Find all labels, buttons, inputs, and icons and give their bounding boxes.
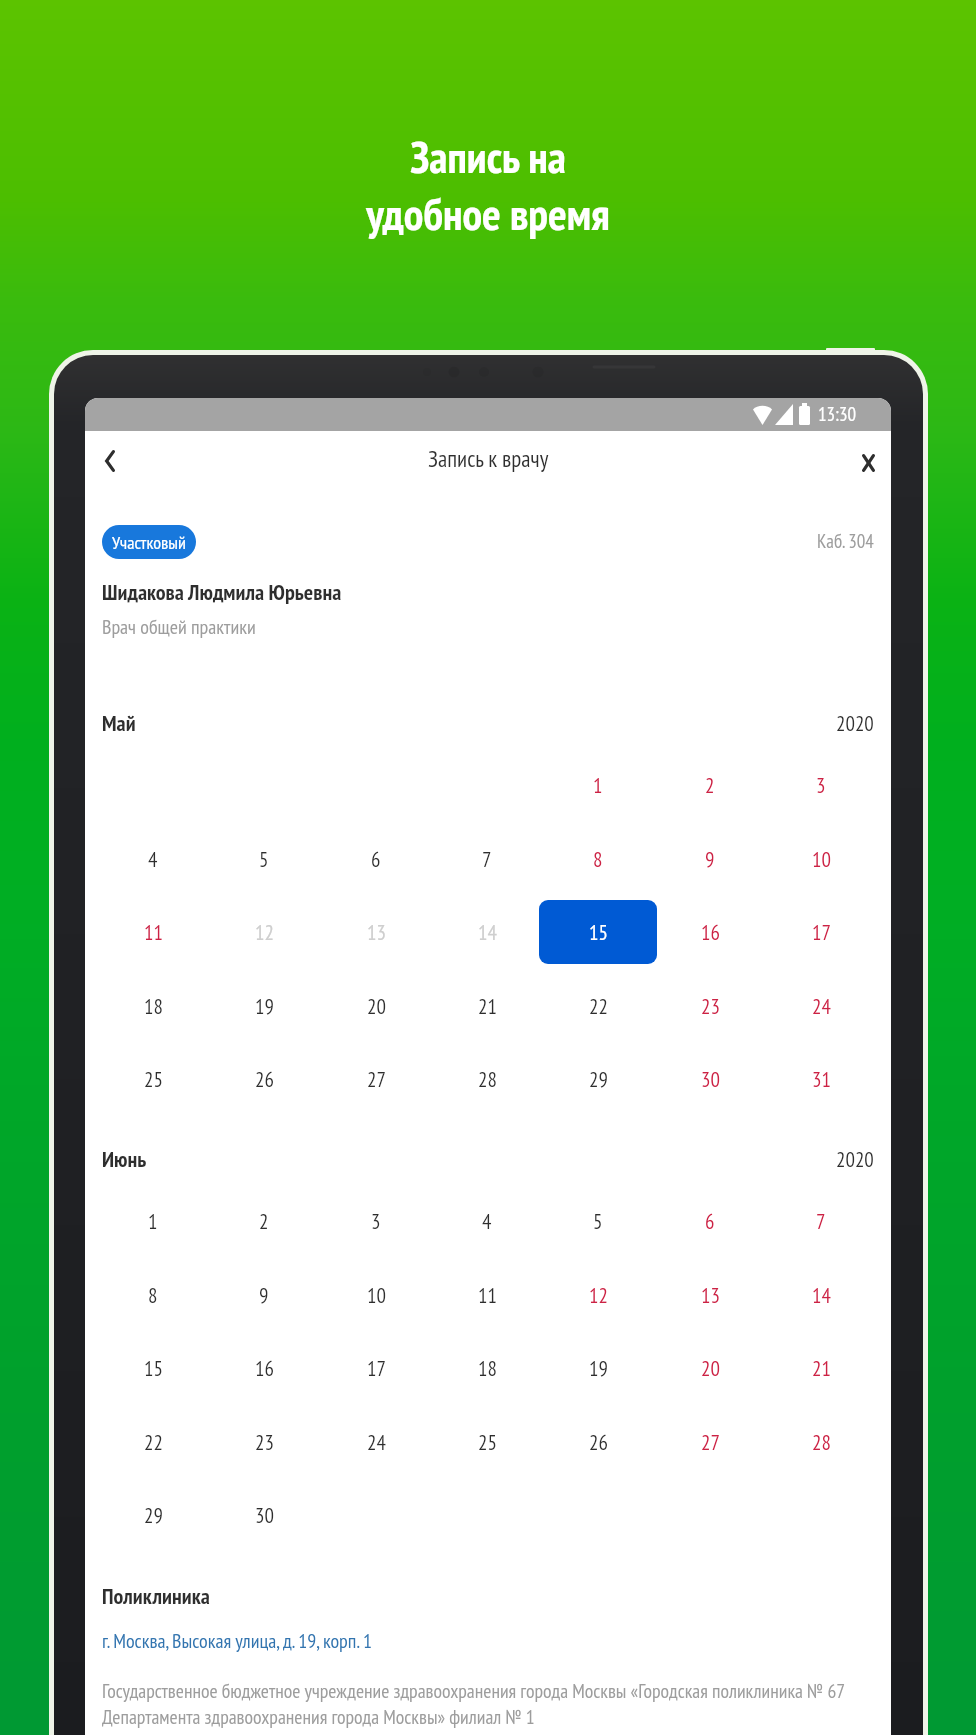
staticText: 15 xyxy=(144,1355,163,1382)
button[interactable]: 21 xyxy=(785,1340,857,1396)
staticText: 26 xyxy=(255,1066,274,1093)
staticText: Врач общей практики xyxy=(102,614,256,640)
staticText: Каб. 304 xyxy=(817,529,874,554)
button[interactable]: 25 xyxy=(451,1414,523,1470)
button[interactable]: 7 xyxy=(785,1193,857,1249)
button[interactable]: г. Москва, Высокая улица, д. 19, корп. 1 xyxy=(102,1628,372,1654)
button[interactable]: 28 xyxy=(785,1414,857,1470)
button[interactable]: 27 xyxy=(674,1414,746,1470)
staticText: 26 xyxy=(589,1429,608,1456)
staticText: 25 xyxy=(144,1066,163,1093)
button[interactable]: 18 xyxy=(451,1340,523,1396)
button[interactable]: 4 xyxy=(451,1193,523,1249)
button[interactable]: 29 xyxy=(562,1051,634,1107)
staticText: 11 xyxy=(478,1282,497,1309)
button[interactable]: 16 xyxy=(674,904,746,960)
button[interactable]: 27 xyxy=(340,1051,412,1107)
button[interactable]: 15 xyxy=(539,900,657,964)
button[interactable]: 13 xyxy=(340,904,412,960)
button[interactable]: 6 xyxy=(340,831,412,887)
button[interactable]: 26 xyxy=(562,1414,634,1470)
button[interactable]: 11 xyxy=(451,1267,523,1323)
button[interactable]: 14 xyxy=(785,1267,857,1323)
button[interactable]: 20 xyxy=(674,1340,746,1396)
staticText: 14 xyxy=(478,919,497,946)
button[interactable]: 23 xyxy=(228,1414,300,1470)
button[interactable]: 10 xyxy=(785,831,857,887)
staticText: 3 xyxy=(816,772,826,799)
button[interactable]: 1 xyxy=(562,757,634,813)
button[interactable]: 6 xyxy=(674,1193,746,1249)
button[interactable]: 24 xyxy=(340,1414,412,1470)
button[interactable]: Назад xyxy=(85,435,139,489)
staticText: 27 xyxy=(701,1429,720,1456)
button[interactable]: 22 xyxy=(562,978,634,1034)
button[interactable]: 28 xyxy=(451,1051,523,1107)
button[interactable]: 3 xyxy=(340,1193,412,1249)
staticText: 10 xyxy=(367,1282,386,1309)
button[interactable]: 2 xyxy=(674,757,746,813)
button[interactable]: 14 xyxy=(451,904,523,960)
staticText: 21 xyxy=(478,993,497,1020)
staticText: 20 xyxy=(701,1355,720,1382)
staticText: 5 xyxy=(259,846,269,873)
button[interactable]: 5 xyxy=(562,1193,634,1249)
staticText: Государственное бюджетное учреждение здр… xyxy=(102,1678,882,1730)
button[interactable]: 9 xyxy=(674,831,746,887)
staticText: 21 xyxy=(812,1355,831,1382)
button[interactable]: 15 xyxy=(117,1340,189,1396)
staticText: 29 xyxy=(589,1066,608,1093)
button[interactable]: 12 xyxy=(228,904,300,960)
button[interactable]: 18 xyxy=(117,978,189,1034)
staticText: 25 xyxy=(478,1429,497,1456)
button[interactable]: 22 xyxy=(117,1414,189,1470)
button[interactable]: 17 xyxy=(785,904,857,960)
staticText: 9 xyxy=(705,846,715,873)
staticText: 16 xyxy=(255,1355,274,1382)
button[interactable]: 3 xyxy=(785,757,857,813)
staticText: 7 xyxy=(816,1208,826,1235)
staticText: 6 xyxy=(705,1208,715,1235)
button[interactable]: 8 xyxy=(117,1267,189,1323)
staticText: 17 xyxy=(812,919,831,946)
button[interactable]: 10 xyxy=(340,1267,412,1323)
button[interactable]: 1 xyxy=(117,1193,189,1249)
staticText: 13 xyxy=(367,919,386,946)
button[interactable]: 8 xyxy=(562,831,634,887)
button[interactable]: Закрыть xyxy=(837,435,891,489)
button[interactable]: 5 xyxy=(228,831,300,887)
button[interactable]: 4 xyxy=(117,831,189,887)
staticText: Июнь xyxy=(102,1145,147,1173)
button[interactable]: 29 xyxy=(117,1487,189,1543)
button[interactable]: 12 xyxy=(562,1267,634,1323)
button[interactable]: 11 xyxy=(117,904,189,960)
button[interactable]: 24 xyxy=(785,978,857,1034)
button[interactable]: 30 xyxy=(674,1051,746,1107)
button[interactable]: 2 xyxy=(228,1193,300,1249)
button[interactable]: 17 xyxy=(340,1340,412,1396)
button[interactable]: 23 xyxy=(674,978,746,1034)
staticText: Запись на xyxy=(410,128,566,185)
button[interactable]: 26 xyxy=(228,1051,300,1107)
staticText: 9 xyxy=(259,1282,269,1309)
button[interactable]: 16 xyxy=(228,1340,300,1396)
button[interactable]: 25 xyxy=(117,1051,189,1107)
staticText: 13:30 xyxy=(818,402,857,427)
staticText: Участковый xyxy=(112,531,186,554)
button[interactable]: 30 xyxy=(228,1487,300,1543)
button[interactable]: 19 xyxy=(562,1340,634,1396)
staticText: 24 xyxy=(812,993,831,1020)
button[interactable]: 20 xyxy=(340,978,412,1034)
button[interactable]: 19 xyxy=(228,978,300,1034)
button[interactable]: 31 xyxy=(785,1051,857,1107)
button[interactable]: 7 xyxy=(451,831,523,887)
staticText: 1 xyxy=(593,772,603,799)
button[interactable]: Участковый xyxy=(102,525,196,559)
button[interactable]: 9 xyxy=(228,1267,300,1323)
staticText: 23 xyxy=(255,1429,274,1456)
button[interactable]: 21 xyxy=(451,978,523,1034)
staticText: 2020 xyxy=(836,710,874,737)
staticText: 13 xyxy=(701,1282,720,1309)
staticText: 20 xyxy=(367,993,386,1020)
button[interactable]: 13 xyxy=(674,1267,746,1323)
